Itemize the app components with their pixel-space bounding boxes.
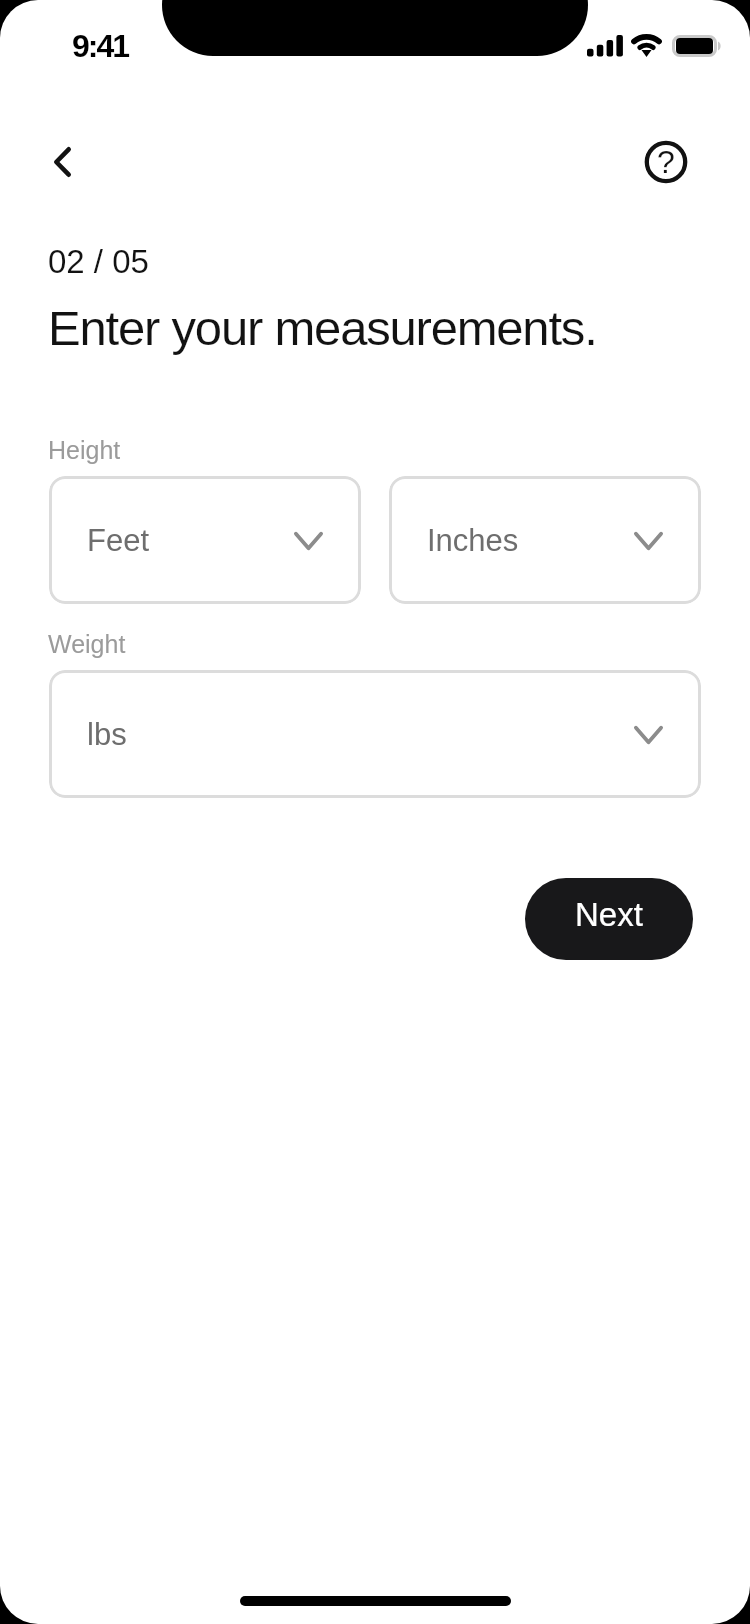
staticText: 02 / 05 (48, 243, 149, 280)
staticText: Enter your measurements. (48, 301, 597, 356)
button[interactable]: lbs (49, 670, 701, 798)
staticText: Height (48, 436, 121, 464)
staticText: Weight (48, 630, 126, 658)
staticText: 9:41 (72, 28, 129, 64)
staticText: Next (575, 896, 643, 933)
staticText: ? (657, 144, 675, 180)
staticText: Feet (87, 523, 150, 558)
button[interactable]: Help (637, 133, 695, 191)
button[interactable]: Back (32, 132, 92, 192)
button[interactable]: Feet (49, 476, 361, 604)
staticText: Inches (427, 523, 519, 558)
other: Cellular, Wi-Fi and battery status (585, 30, 725, 60)
staticText: lbs (87, 717, 127, 752)
button[interactable]: Inches (389, 476, 701, 604)
button[interactable]: Next (525, 878, 693, 960)
